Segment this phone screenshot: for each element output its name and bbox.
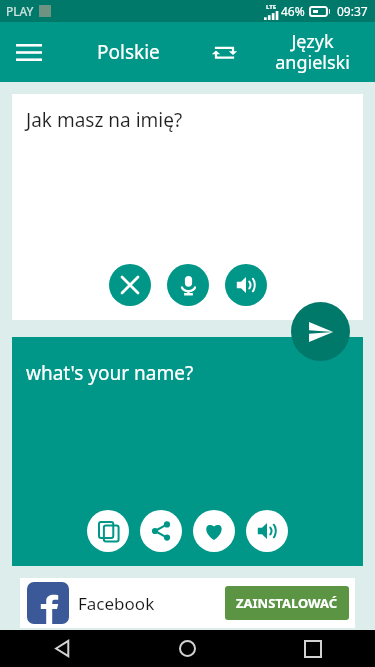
button[interactable]: Back bbox=[0, 630, 125, 667]
button[interactable]: Speak translation bbox=[246, 510, 288, 552]
staticText: LTE bbox=[266, 3, 277, 11]
button[interactable]: Język angielski bbox=[250, 22, 375, 82]
staticText: PLAY bbox=[6, 3, 34, 19]
staticText: Polskie bbox=[97, 39, 160, 65]
staticText: 46% bbox=[281, 3, 305, 19]
staticText: what's your name? bbox=[26, 360, 194, 386]
button[interactable]: Speak source text bbox=[225, 264, 267, 306]
button[interactable]: Add to favorites bbox=[193, 510, 235, 552]
staticText: Jak masz na imię? bbox=[26, 107, 183, 133]
button[interactable]: ZAINSTALOWAĆ bbox=[225, 586, 349, 620]
button[interactable]: Translate bbox=[291, 302, 350, 361]
staticText: ZAINSTALOWAĆ bbox=[236, 594, 338, 612]
button[interactable]: Voice input bbox=[167, 264, 209, 306]
button[interactable]: Polskie bbox=[58, 22, 198, 82]
staticText: Facebook bbox=[78, 592, 155, 615]
button[interactable]: Swap languages bbox=[198, 22, 250, 82]
button[interactable]: what's your name? bbox=[12, 337, 363, 566]
button[interactable]: Facebook bbox=[20, 578, 355, 628]
staticText: Język angielski bbox=[275, 29, 350, 75]
button[interactable]: Copy bbox=[87, 510, 129, 552]
button[interactable]: Recent apps bbox=[250, 630, 375, 667]
button[interactable]: Home bbox=[125, 630, 250, 667]
staticText: 09:37 bbox=[337, 3, 368, 19]
button[interactable]: Menu bbox=[0, 22, 58, 82]
button[interactable]: Jak masz na imię? bbox=[12, 94, 363, 320]
button[interactable]: Share bbox=[140, 510, 182, 552]
button[interactable]: Clear bbox=[109, 264, 151, 306]
